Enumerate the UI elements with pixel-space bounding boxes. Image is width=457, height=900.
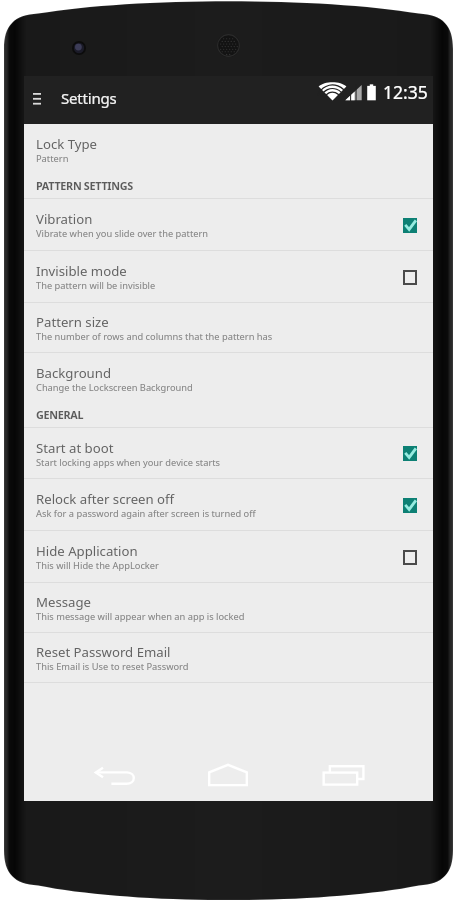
- button[interactable]: Reset Password Email: [24, 633, 433, 682]
- button[interactable]: Invisible mode: [24, 251, 433, 302]
- staticText: Reset Password Email: [36, 643, 171, 661]
- staticText: Start at boot: [36, 439, 114, 457]
- staticText: Relock after screen off: [36, 490, 175, 508]
- staticText: Settings: [61, 88, 117, 108]
- staticText: Message: [36, 593, 91, 611]
- staticText: Vibrate when you slide over the pattern: [36, 227, 209, 240]
- button[interactable]: Pattern size: [24, 303, 433, 352]
- staticText: Hide Application: [36, 542, 138, 560]
- staticText: This will Hide the AppLocker: [36, 559, 159, 572]
- staticText: Vibration: [36, 210, 93, 228]
- staticText: Change the Lockscreen Background: [36, 381, 193, 394]
- button[interactable]: Background: [24, 353, 433, 404]
- staticText: Background: [36, 364, 112, 382]
- staticText: GENERAL: [36, 407, 84, 422]
- staticText: Lock Type: [36, 135, 98, 153]
- button[interactable]: Recent apps: [314, 753, 370, 797]
- staticText: This message will appear when an app is …: [36, 610, 245, 623]
- staticText: Pattern: [36, 152, 69, 165]
- staticText: The number of rows and columns that the …: [36, 330, 273, 343]
- button[interactable]: Start at boot: [24, 428, 433, 478]
- button[interactable]: Back: [87, 753, 143, 797]
- staticText: Ask for a password again after screen is…: [36, 507, 256, 520]
- staticText: PATTERN SETTINGS: [36, 178, 133, 193]
- staticText: This Email is Use to reset Password: [36, 660, 189, 673]
- button[interactable]: Vibration: [24, 199, 433, 250]
- staticText: Invisible mode: [36, 262, 127, 280]
- button[interactable]: Home: [200, 753, 256, 797]
- staticText: The pattern will be invisible: [36, 279, 156, 292]
- button[interactable]: Hide Application: [24, 531, 433, 582]
- button[interactable]: Message: [24, 583, 433, 632]
- staticText: Pattern size: [36, 313, 109, 331]
- button[interactable]: Open navigation menu: [24, 76, 50, 124]
- button[interactable]: Lock Type: [24, 124, 433, 175]
- staticText: Start locking apps when your device star…: [36, 456, 221, 469]
- button[interactable]: Relock after screen off: [24, 479, 433, 530]
- staticText: 12:35: [383, 80, 428, 104]
